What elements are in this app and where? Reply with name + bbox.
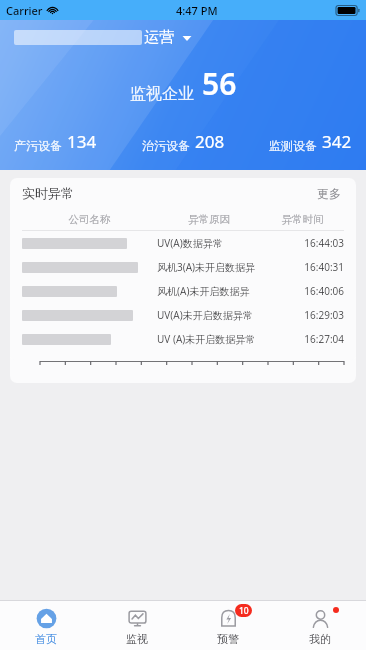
button[interactable]: UV (A)未开启数据异常 [10, 327, 356, 351]
button[interactable]: 我的 [274, 601, 366, 650]
staticText: 公司名称 [22, 213, 157, 226]
staticText: 15 [197, 270, 206, 280]
staticText: 208 [195, 130, 225, 153]
staticText: 342 [322, 130, 352, 153]
staticText: 134 [67, 130, 97, 153]
staticText: 16 [158, 265, 167, 275]
staticText: 治污设备 [142, 138, 190, 153]
staticText: 16:44:03 [261, 236, 344, 250]
staticText: 日报 [16, 184, 46, 203]
staticText: 异常原因 [157, 213, 261, 226]
button[interactable]: UV(A)数据异常 [10, 231, 356, 255]
staticText: 运营 [144, 28, 174, 47]
button[interactable]: 日报 [16, 184, 50, 203]
staticText: 首页 [35, 632, 57, 646]
staticText: 我的 [309, 632, 331, 646]
staticText: 异常时间 [261, 213, 344, 226]
staticText: 监测设备 [269, 138, 317, 153]
staticText: 更多 [317, 186, 341, 201]
staticText: 15 [20, 276, 30, 288]
button[interactable]: 治污设备 [138, 126, 229, 157]
staticText: 监视企业 [130, 84, 194, 104]
staticText: 监视 [126, 632, 148, 646]
staticText: 16:40:31 [261, 260, 344, 274]
button[interactable]: 首页 [0, 601, 91, 650]
staticText: 实时异常 [22, 185, 74, 201]
staticText: 10 [239, 605, 249, 617]
staticText: 56 [202, 63, 237, 104]
staticText: 20 [20, 252, 30, 264]
staticText: 13 [233, 281, 242, 291]
button[interactable]: 监视 [91, 601, 182, 650]
staticText: 13 [247, 281, 256, 291]
staticText: 4:47 PM [176, 3, 218, 18]
button[interactable]: 监测设备 [265, 126, 356, 157]
button[interactable]: 风机(A)未开启数据异 [10, 279, 356, 303]
staticText: 21 [121, 238, 130, 248]
staticText: 5 [25, 325, 30, 337]
button[interactable]: 预警 [182, 601, 274, 650]
button[interactable]: Select organization [180, 31, 194, 45]
staticText: 16:40:06 [261, 284, 344, 298]
staticText: 16:29:03 [261, 308, 344, 322]
staticText: 产污设备 [14, 138, 62, 153]
staticText: 13 [222, 281, 231, 291]
button[interactable]: 风机3(A)未开启数据异 [10, 255, 356, 279]
staticText: 风机(A)未开启数据异 [157, 284, 261, 298]
staticText: 预警 [217, 632, 239, 646]
staticText: 16:27:04 [261, 332, 344, 346]
button[interactable]: 更多 [314, 183, 344, 204]
staticText: 25 [20, 228, 30, 240]
staticText: UV(A)未开启数据异常 [157, 308, 261, 322]
button[interactable]: 月评 [316, 185, 350, 201]
staticText: UV(A)数据异常 [157, 236, 261, 250]
staticText: 风机3(A)未开启数据异 [157, 260, 261, 274]
staticText: 月评 [320, 185, 346, 201]
staticText: 10 [20, 301, 30, 313]
staticText: Carrier [6, 3, 43, 18]
staticText: UV (A)未开启数据异常 [157, 332, 261, 346]
staticText: 15 [208, 270, 217, 280]
button[interactable]: 产污设备 [10, 126, 101, 157]
button[interactable]: UV(A)未开启数据异常 [10, 303, 356, 327]
